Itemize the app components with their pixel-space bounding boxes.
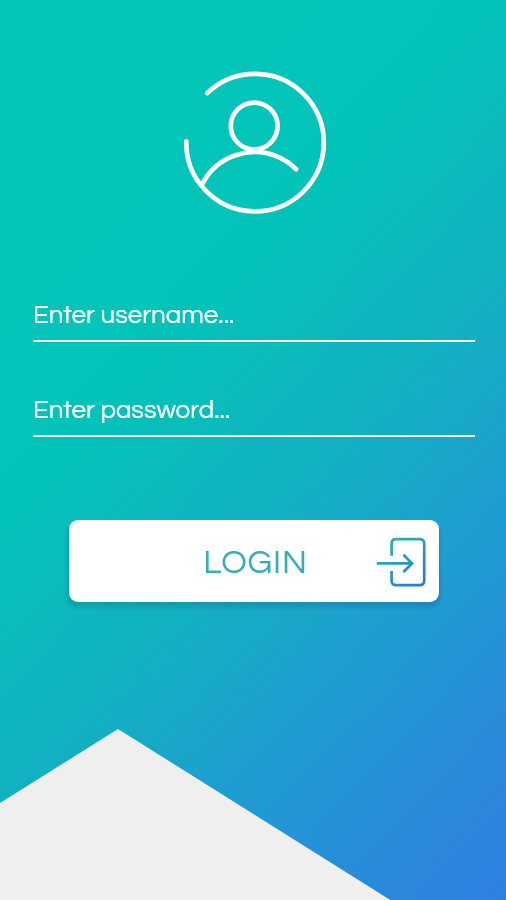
button[interactable]: Enter password... bbox=[33, 379, 475, 437]
button[interactable]: Enter username... bbox=[33, 284, 475, 342]
staticText: Enter password... bbox=[33, 397, 231, 424]
staticText: LOGIN bbox=[203, 545, 308, 580]
other: Profile avatar bbox=[0, 0, 506, 900]
staticText: Enter username... bbox=[33, 302, 235, 329]
other: Log in bbox=[375, 536, 427, 588]
button[interactable]: LOGIN bbox=[69, 520, 439, 602]
